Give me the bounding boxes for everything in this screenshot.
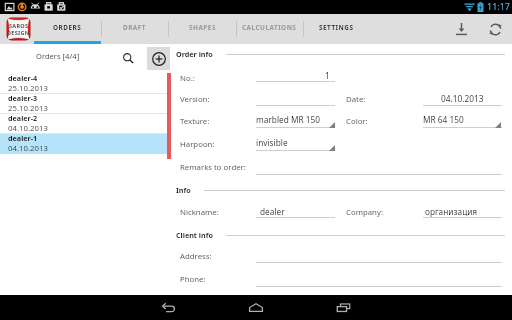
staticText: 04.10.2013 <box>8 143 48 154</box>
staticText: Client info <box>176 230 213 240</box>
button[interactable]: Add order <box>147 47 170 70</box>
staticText: 25.10.2013 <box>8 83 48 94</box>
staticText: dealer-2 <box>8 113 38 123</box>
staticText: CALCULATIONS <box>242 23 297 32</box>
staticText: 25.10.2013 <box>8 103 48 114</box>
staticText: Date: <box>346 94 366 105</box>
staticText: marbled MR 150 <box>256 114 321 125</box>
staticText: dealer <box>260 206 285 217</box>
staticText: Texture: <box>180 116 210 127</box>
staticText: dealer-4 <box>8 73 38 83</box>
staticText: DESIGN <box>7 29 30 36</box>
staticText: Harpoon: <box>180 139 215 150</box>
button[interactable]: Refresh <box>480 14 510 44</box>
button[interactable]: dealer-3 <box>0 94 167 114</box>
staticText: No.: <box>180 73 195 84</box>
staticText: invisible <box>256 137 288 148</box>
staticText: SAROS <box>9 22 29 29</box>
button[interactable]: Back <box>146 295 190 320</box>
staticText: организация <box>425 206 478 217</box>
button[interactable]: Search <box>117 47 139 69</box>
staticText: Nickname: <box>180 207 219 218</box>
staticText: Orders [4/4] <box>36 51 80 61</box>
staticText: MR 64 150 <box>423 114 464 125</box>
staticText: ORDERS <box>53 23 82 32</box>
button[interactable]: Recent apps <box>322 295 366 320</box>
button[interactable]: dealer-1 <box>0 134 167 154</box>
staticText: Order info <box>176 49 213 59</box>
staticText: Company: <box>346 207 383 218</box>
button[interactable]: Input <box>423 127 502 128</box>
staticText: DRAFT <box>123 23 146 32</box>
button[interactable]: dealer-4 <box>0 74 167 94</box>
button[interactable]: dealer-2 <box>0 114 167 134</box>
staticText: 1 <box>325 70 330 81</box>
staticText: Phone: <box>180 274 206 285</box>
button[interactable]: DRAFT <box>101 14 168 44</box>
button[interactable]: SHAPES <box>168 14 236 44</box>
staticText: 11:17 <box>487 0 511 12</box>
staticText: 04.10.2013 <box>8 123 48 134</box>
button[interactable]: ORDERS <box>34 14 101 44</box>
staticText: Color: <box>346 116 368 127</box>
staticText: SETTINGS <box>319 23 354 32</box>
staticText: SHAPES <box>189 23 216 32</box>
staticText: Remarks to order: <box>180 162 246 173</box>
staticText: dealer-3 <box>8 93 38 103</box>
button[interactable]: SETTINGS <box>303 14 370 44</box>
staticText: dealer-1 <box>8 133 38 143</box>
button[interactable]: Input <box>256 150 335 151</box>
button[interactable]: CALCULATIONS <box>236 14 303 44</box>
staticText: Info <box>176 185 191 195</box>
staticText: 04.10.2013 <box>441 93 484 104</box>
button[interactable]: Download <box>446 14 476 44</box>
button[interactable]: Input <box>256 127 335 128</box>
staticText: Version: <box>180 94 210 105</box>
button[interactable]: Home <box>234 295 278 320</box>
button[interactable]: Saros Design <box>6 17 31 41</box>
staticText: Address: <box>180 251 212 262</box>
